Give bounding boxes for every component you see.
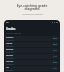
staticText: 84%: [53, 61, 58, 64]
button[interactable]: History: [5, 54, 59, 59]
staticText: 79%: [53, 55, 58, 58]
staticText: 95%: [53, 49, 58, 52]
staticText: Art: [6, 66, 10, 69]
staticText: Eye-catching grade diagrams: [1, 3, 63, 11]
staticText: 92%: [53, 37, 58, 40]
button[interactable]: Art: [5, 66, 59, 71]
staticText: 9:41: [6, 21, 10, 23]
staticText: Semester 1: [6, 63, 15, 65]
staticText: Semester overview: [6, 32, 21, 34]
staticText: Visualise your progress: [22, 13, 43, 16]
staticText: Maths: [6, 42, 13, 45]
button[interactable]: Biology: [5, 48, 59, 53]
staticText: Physics: [6, 60, 14, 63]
staticText: Biology: [6, 48, 14, 51]
staticText: Semester 1: [6, 39, 15, 41]
staticText: English: [6, 36, 14, 39]
button[interactable]: Physics: [5, 60, 59, 65]
button[interactable]: Maths: [5, 42, 59, 47]
staticText: 90%: [53, 67, 58, 70]
staticText: History: [6, 54, 14, 57]
staticText: Semester 1: [6, 57, 15, 59]
staticText: Grades: [6, 27, 16, 31]
staticText: Semester 1: [6, 69, 15, 71]
staticText: Semester 1: [6, 51, 15, 53]
button[interactable]: English: [5, 36, 59, 41]
staticText: Semester 1: [6, 45, 15, 47]
staticText: 88%: [53, 43, 58, 46]
